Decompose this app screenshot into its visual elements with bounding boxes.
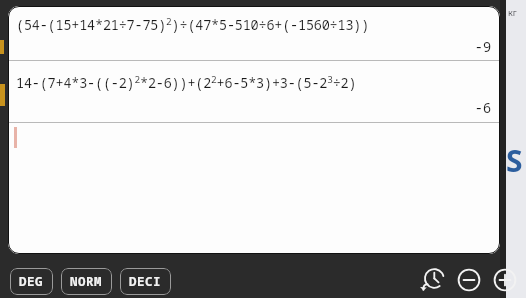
staticText: DECI bbox=[129, 273, 162, 290]
staticText: (54-(15+14*21÷7-75)2)÷(47*5-510÷6+(-1560… bbox=[16, 15, 370, 34]
staticText: 14-(7+4*3-((-2)2*2-6))+(22+6-5*3)+3-(5-2… bbox=[16, 73, 357, 92]
button[interactable]: DECI bbox=[120, 268, 171, 295]
staticText: DEG bbox=[19, 273, 44, 290]
staticText: S bbox=[506, 140, 523, 181]
button[interactable]: DEG bbox=[10, 268, 53, 295]
button[interactable]: Decrease text size bbox=[454, 265, 484, 295]
staticText: кг bbox=[508, 6, 517, 18]
staticText: -6 bbox=[474, 99, 491, 117]
staticText: NORM bbox=[70, 273, 103, 290]
staticText: -9 bbox=[474, 38, 491, 56]
button[interactable]: History bbox=[418, 265, 448, 295]
button[interactable]: NORM bbox=[61, 268, 112, 295]
button[interactable]: Increase text size bbox=[490, 265, 520, 295]
